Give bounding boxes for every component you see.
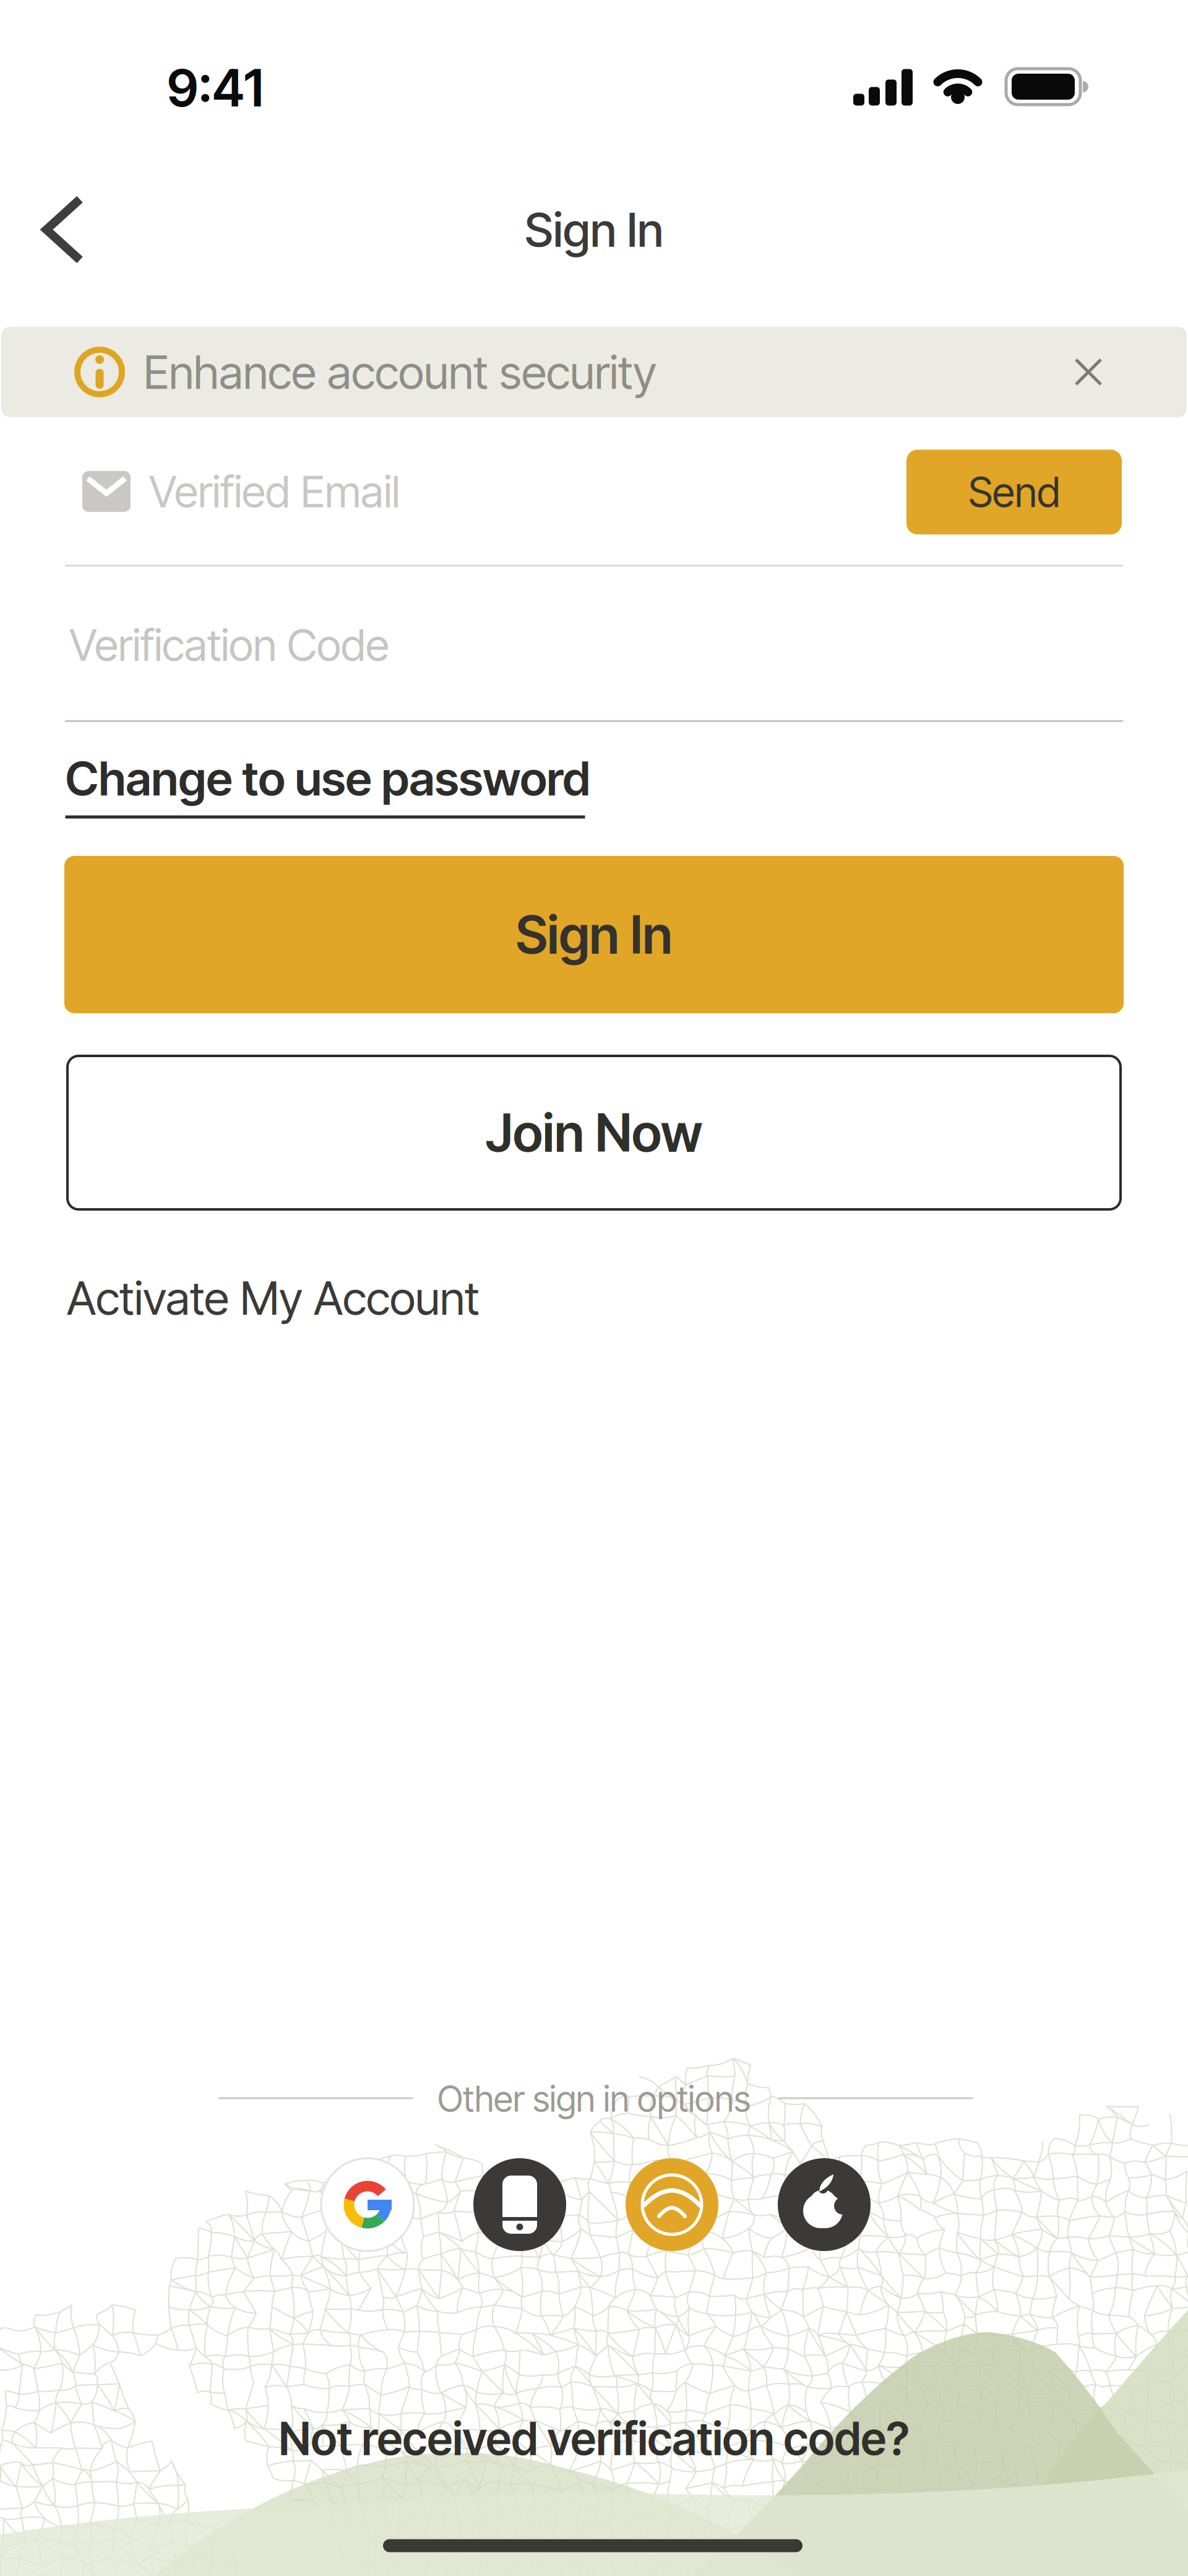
staticText: Enhance account security [144, 344, 656, 400]
staticText: Sign In [516, 903, 672, 966]
staticText: Join Now [486, 1101, 702, 1164]
staticText: Verified Email [149, 465, 400, 518]
staticText: Change to use password [65, 750, 591, 807]
button[interactable]: Back [40, 194, 96, 265]
button[interactable]: Sign in with account [626, 2158, 718, 2251]
staticText: Not received verification code? [279, 2411, 909, 2466]
staticText: Verification Code [69, 618, 389, 671]
button[interactable]: Join Now [67, 1056, 1121, 1209]
staticText: Sign In [525, 201, 663, 258]
button[interactable]: Sign in with Apple [778, 2158, 871, 2251]
button[interactable]: Change to use password [65, 750, 591, 819]
staticText: Activate My Account [67, 1270, 480, 1326]
button[interactable]: Activate My Account [67, 1264, 500, 1332]
staticText: Other sign in options [437, 2077, 751, 2120]
button[interactable]: Send [906, 450, 1122, 534]
button[interactable]: Sign in with Google [321, 2158, 414, 2251]
button[interactable]: Not received verification code? [279, 2411, 909, 2466]
staticText: 9:41 [167, 57, 264, 119]
button[interactable]: Sign in with phone [473, 2158, 566, 2251]
staticText: Send [968, 467, 1060, 517]
button[interactable]: Close [1064, 347, 1113, 397]
button[interactable]: Sign In [64, 856, 1124, 1013]
